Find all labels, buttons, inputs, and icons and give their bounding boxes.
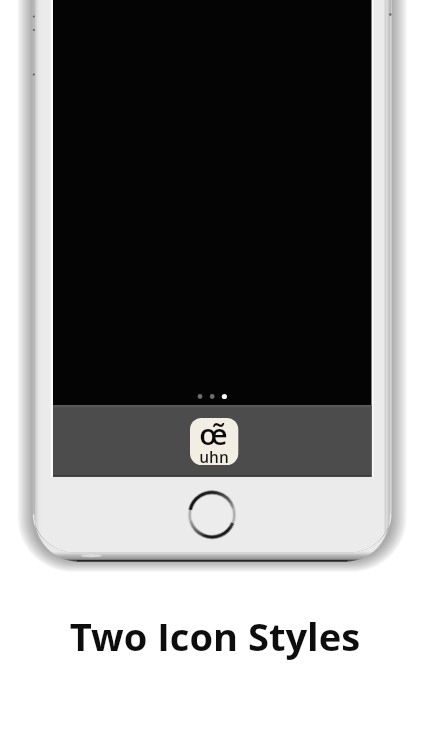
- button[interactable]: Two Icon Styles: [4, 610, 422, 662]
- staticText: uhn: [199, 446, 229, 467]
- staticText: œ̃: [199, 413, 228, 453]
- button[interactable]: uhn app icon: [190, 418, 238, 465]
